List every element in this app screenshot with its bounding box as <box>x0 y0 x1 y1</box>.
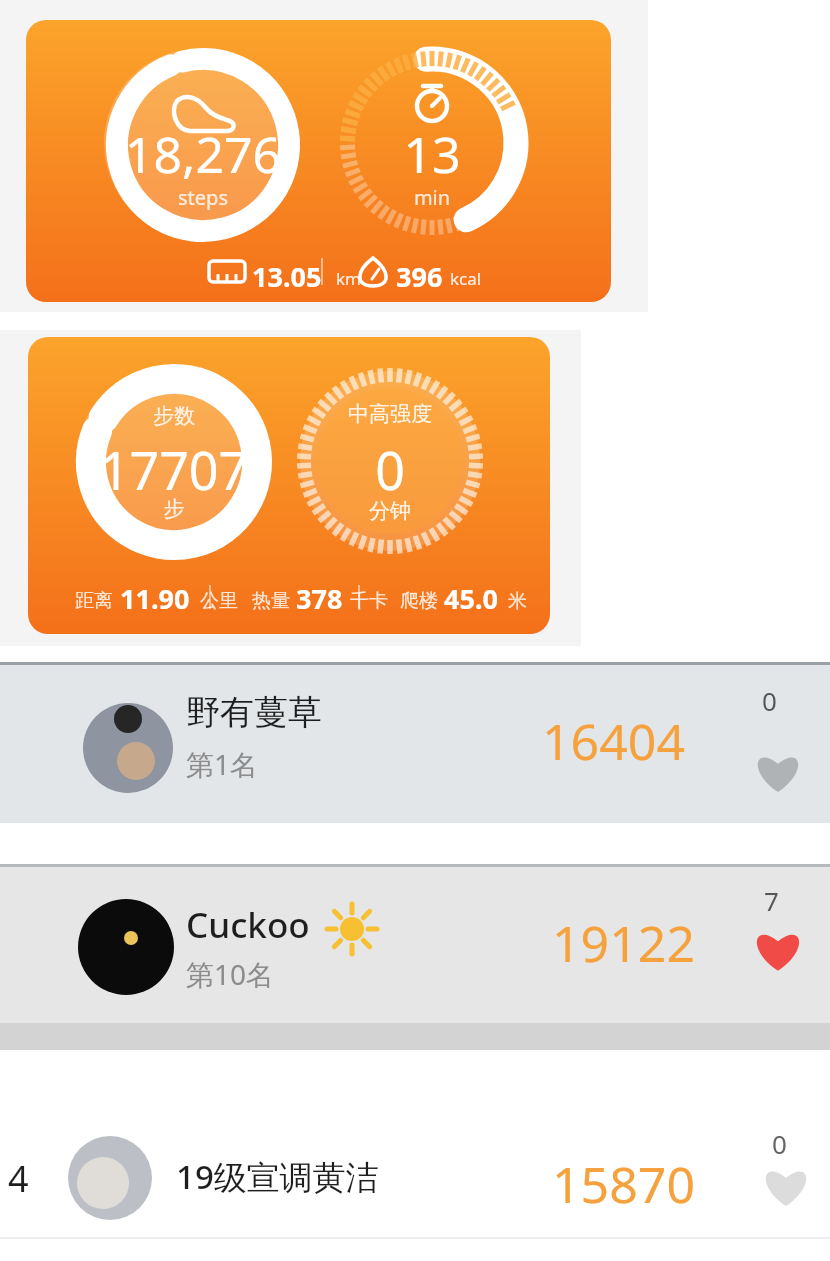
staticText: 0 <box>762 683 777 718</box>
staticText: 第10名 <box>186 955 275 993</box>
button[interactable]: 步数 <box>28 337 550 634</box>
staticText: 18,276 <box>26 120 380 188</box>
staticText: 15870 <box>552 1150 695 1218</box>
staticText: 11.90 <box>120 580 190 617</box>
staticText: 分钟 <box>310 498 470 524</box>
staticText: 13.05 <box>252 258 322 295</box>
staticText: 13 <box>352 120 512 188</box>
staticText: 野有蔓草 <box>186 691 322 734</box>
button[interactable]: 18,276 <box>26 20 611 302</box>
staticText: 热量 <box>252 589 290 613</box>
staticText: 396 <box>396 258 443 295</box>
staticText: 步数 <box>94 403 254 429</box>
staticText: 爬楼 <box>400 589 438 613</box>
staticText: 千卡 <box>350 589 388 613</box>
staticText: 0 <box>310 434 470 505</box>
staticText: 378 <box>296 580 343 617</box>
staticText: 米 <box>508 589 527 613</box>
staticText: 19级宣调黄洁 <box>176 1154 379 1199</box>
button[interactable]: Cuckoo <box>0 867 830 1023</box>
staticText: 公里 <box>200 589 238 613</box>
staticText: 中高强度 <box>310 401 470 427</box>
staticText: 17707 <box>94 434 254 505</box>
staticText: 4 <box>8 1154 29 1203</box>
staticText: kcal <box>450 267 482 290</box>
staticText: 距离 <box>75 589 113 613</box>
staticText: 45.0 <box>444 580 498 617</box>
staticText: Cuckoo <box>186 901 310 949</box>
staticText: 步 <box>94 496 254 522</box>
staticText: 19122 <box>552 909 695 977</box>
staticText: 第1名 <box>186 745 259 783</box>
staticText: 7 <box>764 883 779 918</box>
button[interactable]: 4 <box>0 1050 830 1237</box>
staticText: 0 <box>772 1126 787 1161</box>
staticText: steps <box>26 184 380 211</box>
staticText: km <box>336 267 361 290</box>
button[interactable]: 野有蔓草 <box>0 665 830 823</box>
staticText: min <box>352 184 512 211</box>
staticText: 16404 <box>542 707 685 775</box>
